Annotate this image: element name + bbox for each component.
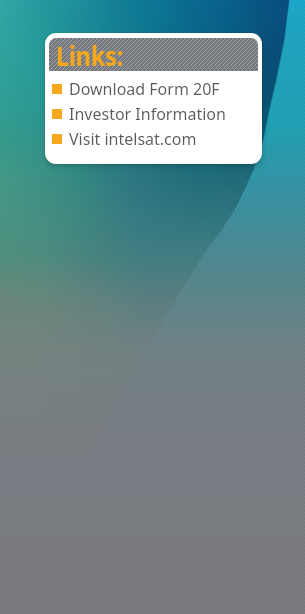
staticText: Visit intelsat.com [69,128,197,150]
button[interactable]: Download Form 20F [49,76,258,101]
button[interactable]: Visit intelsat.com [49,126,258,151]
staticText: Investor Information [69,103,226,125]
button[interactable]: Investor Information [49,101,258,126]
staticText: Links: [56,38,124,71]
staticText: Download Form 20F [69,78,220,100]
